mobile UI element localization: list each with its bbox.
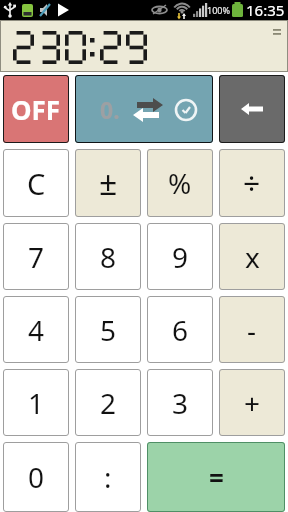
button[interactable]: 8 <box>75 223 141 290</box>
button[interactable]: OFF <box>3 75 69 143</box>
staticText: 8 <box>100 238 117 276</box>
staticText: 2 <box>100 384 117 422</box>
button[interactable]: 4 <box>3 296 69 363</box>
button[interactable]: 9 <box>147 223 213 290</box>
button[interactable] <box>0 20 288 72</box>
button[interactable]: 0 <box>3 442 69 512</box>
staticText: 7 <box>28 238 45 276</box>
staticText: x <box>245 238 260 276</box>
button[interactable]: 3 <box>147 369 213 436</box>
button[interactable]: ÷ <box>219 149 285 217</box>
staticText: : <box>104 458 112 496</box>
staticText: 100% <box>207 4 230 16</box>
button[interactable]: 1 <box>3 369 69 436</box>
button[interactable]: ± <box>75 149 141 217</box>
staticText: 1 <box>28 384 45 422</box>
button[interactable]: C <box>3 149 69 217</box>
button[interactable]: 2 <box>75 369 141 436</box>
button[interactable]: % <box>147 149 213 217</box>
staticText: 9 <box>172 238 189 276</box>
staticText: ± <box>99 161 118 205</box>
staticText: 6 <box>172 311 189 349</box>
button[interactable]: - <box>219 296 285 363</box>
staticText: C <box>27 164 46 203</box>
button[interactable]: 0. <box>75 75 213 143</box>
staticText: 0. <box>100 94 120 125</box>
staticText: OFF <box>11 92 61 127</box>
staticText: 16:35 <box>246 0 285 20</box>
staticText: ÷ <box>243 163 261 204</box>
button[interactable]: = <box>147 442 285 512</box>
button[interactable] <box>219 75 285 143</box>
staticText: 3 <box>172 384 189 422</box>
button[interactable]: + <box>219 369 285 436</box>
button[interactable]: 7 <box>3 223 69 290</box>
staticText: % <box>168 164 192 202</box>
staticText: 5 <box>100 311 117 349</box>
button[interactable]: x <box>219 223 285 290</box>
staticText: 0 <box>28 458 45 496</box>
button[interactable]: : <box>75 442 141 512</box>
staticText: = <box>209 460 224 495</box>
staticText: + <box>244 384 261 422</box>
staticText: - <box>247 311 257 349</box>
button[interactable]: 5 <box>75 296 141 363</box>
button[interactable]: 6 <box>147 296 213 363</box>
staticText: 4 <box>28 311 45 349</box>
